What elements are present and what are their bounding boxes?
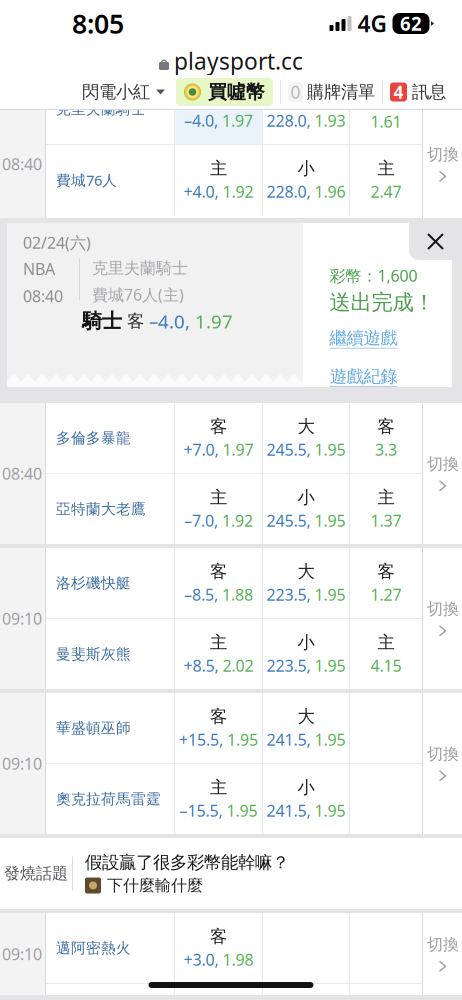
button[interactable]: 主	[175, 764, 262, 834]
button[interactable]: 小	[263, 474, 349, 544]
button[interactable]: 主	[175, 619, 262, 689]
staticText: 4	[393, 80, 403, 103]
staticText: 大	[297, 87, 314, 108]
button[interactable]: 主	[350, 474, 422, 544]
staticText: 02/24(六)	[23, 232, 91, 253]
button[interactable]: 繼續遊戲	[329, 315, 397, 349]
staticText: 62	[400, 11, 422, 36]
button[interactable]: 大	[263, 548, 349, 618]
staticText: 1.95	[226, 800, 257, 821]
staticText: 客	[210, 706, 227, 727]
button[interactable]: 客	[175, 74, 262, 144]
button[interactable]: 主	[175, 474, 262, 544]
button[interactable]: 主	[350, 145, 422, 215]
button[interactable]: 閃電小紅	[71, 78, 176, 106]
staticText: 閃電小紅	[82, 81, 150, 103]
staticText: +3.0,	[183, 949, 218, 970]
staticText: +4.0,	[183, 181, 218, 202]
staticText: 1.88	[222, 584, 253, 605]
staticText: 08:40	[23, 285, 63, 307]
staticText: 3.3	[375, 439, 397, 460]
staticText: 主	[377, 487, 394, 508]
button[interactable]: 客	[350, 548, 422, 618]
button[interactable]: 洛杉磯快艇	[46, 548, 174, 618]
button[interactable]: 客	[175, 548, 262, 618]
button[interactable]: 客	[175, 913, 262, 983]
staticText: 08:40	[2, 153, 42, 175]
staticText: 1.95	[314, 800, 345, 821]
staticText: 小	[297, 487, 314, 508]
staticText: 主	[210, 632, 227, 653]
button[interactable]: 主	[350, 619, 422, 689]
staticText: 彩幣：1,600	[329, 265, 417, 286]
staticText: 奧克拉荷馬雷霆	[56, 790, 161, 808]
staticText: 客	[377, 561, 394, 582]
button[interactable]: 切換	[423, 403, 462, 544]
staticText: 小	[297, 158, 314, 179]
staticText: 1.97	[222, 439, 253, 460]
staticText: –8.5,	[184, 584, 218, 605]
staticText: 下什麼輸什麼	[107, 876, 203, 895]
button[interactable]: 大	[263, 403, 349, 473]
staticText: 09:10	[2, 943, 42, 965]
staticText: 假設贏了很多彩幣能幹嘛？	[85, 852, 289, 873]
staticText: 1.93	[314, 110, 345, 131]
staticText: –4.0,	[149, 309, 190, 333]
button[interactable]: Close	[409, 223, 462, 260]
button[interactable]: 小	[263, 764, 349, 834]
button[interactable]: 亞特蘭大老鷹	[46, 474, 174, 544]
staticText: 228.0,	[266, 110, 310, 131]
button[interactable]: 0	[288, 78, 375, 106]
staticText: 主	[377, 632, 394, 653]
staticText: 1.95	[314, 584, 345, 605]
staticText: 費城76人(主)	[92, 284, 184, 305]
staticText: 1.95	[314, 729, 345, 750]
staticText: 洛杉磯快艇	[56, 574, 131, 592]
button[interactable]: 奧克拉荷馬雷霆	[46, 764, 174, 834]
button[interactable]: 克里夫蘭騎士	[46, 74, 174, 144]
button[interactable]: 切換	[423, 548, 462, 689]
staticText: 大	[297, 706, 314, 727]
button[interactable]: 大	[263, 74, 349, 144]
button[interactable]: 小	[263, 619, 349, 689]
button[interactable]: 客	[350, 403, 422, 473]
staticText: +15.5,	[179, 729, 223, 750]
staticText: 1.97	[195, 309, 233, 333]
staticText: 切換	[427, 599, 459, 619]
button[interactable]: 遊戲紀錄	[329, 349, 397, 387]
staticText: 主	[210, 487, 227, 508]
staticText: 2.02	[222, 655, 253, 676]
button[interactable]	[350, 74, 422, 144]
button[interactable]: 切換	[423, 913, 462, 995]
staticText: 1.97	[222, 110, 253, 131]
staticText: 228.0,	[266, 181, 310, 202]
staticText: 客	[210, 926, 227, 947]
button[interactable]: 發燒話題	[0, 838, 462, 909]
staticText: 2.47	[370, 181, 401, 202]
staticText: 克里夫蘭騎士	[56, 100, 146, 118]
staticText: 4.15	[370, 655, 401, 676]
button[interactable]	[46, 984, 174, 1000]
staticText: –15.5,	[179, 800, 222, 821]
staticText: 主	[210, 158, 227, 179]
button[interactable]: 主	[175, 145, 262, 215]
button[interactable]: 多倫多暴龍	[46, 403, 174, 473]
staticText: 邁阿密熱火	[56, 939, 131, 957]
staticText: 08:40	[2, 463, 42, 484]
button[interactable]: 4	[390, 78, 462, 106]
button[interactable]: 切換	[423, 693, 462, 834]
button[interactable]: 邁阿密熱火	[46, 913, 174, 983]
button[interactable]: 客	[175, 403, 262, 473]
button[interactable]: 費城76人	[46, 145, 174, 215]
button[interactable]: 華盛頓巫師	[46, 693, 174, 763]
button[interactable]: 買噓幣	[176, 78, 273, 106]
staticText: 4G	[357, 8, 386, 38]
staticText: 241.5,	[266, 729, 310, 750]
staticText: 客	[210, 561, 227, 582]
button[interactable]: 客	[175, 693, 262, 763]
button[interactable]: 曼斐斯灰熊	[46, 619, 174, 689]
staticText: 送出完成！	[329, 289, 434, 315]
button[interactable]: 切換	[423, 110, 462, 218]
button[interactable]: 小	[263, 145, 349, 215]
button[interactable]: 大	[263, 693, 349, 763]
